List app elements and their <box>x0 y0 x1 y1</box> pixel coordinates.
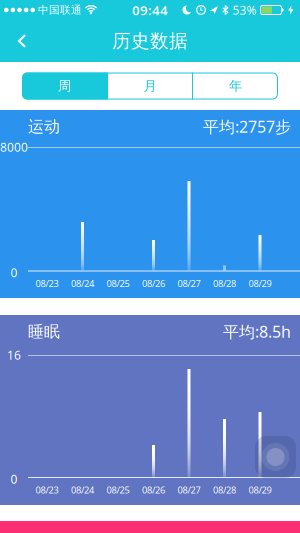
button[interactable]: 周 <box>22 72 107 99</box>
staticText: 0 <box>10 264 17 280</box>
staticText: 08/26 <box>142 277 165 290</box>
button[interactable]: 月 <box>108 72 192 99</box>
staticText: 08/23 <box>35 484 58 496</box>
staticText: 08/28 <box>213 277 236 290</box>
staticText: 08/26 <box>142 484 165 496</box>
staticText: 年 <box>229 78 242 94</box>
staticText: 周 <box>58 78 71 94</box>
staticText: 08/25 <box>106 277 129 290</box>
staticText: 08/24 <box>71 277 94 290</box>
staticText: 08/27 <box>177 277 200 290</box>
staticText: 历史数据 <box>112 29 188 52</box>
staticText: 中国联通 <box>38 3 82 16</box>
staticText: 08/24 <box>71 484 94 496</box>
staticText: 08/29 <box>248 277 271 290</box>
staticText: 09:44 <box>132 1 168 19</box>
staticText: 16 <box>7 347 21 363</box>
staticText: 运动 <box>28 117 60 136</box>
staticText: 08/29 <box>248 484 271 496</box>
staticText: 08/25 <box>106 484 129 496</box>
staticText: 睡眠 <box>28 322 60 341</box>
staticText: 8000 <box>0 139 28 155</box>
staticText: 53% <box>232 2 256 18</box>
button[interactable]: 年 <box>193 72 278 99</box>
staticText: 平均:2757步 <box>203 116 291 137</box>
staticText: 08/28 <box>213 484 236 496</box>
button[interactable] <box>255 436 296 478</box>
button[interactable] <box>0 20 40 62</box>
staticText: 月 <box>143 78 156 94</box>
staticText: 平均:8.5h <box>223 321 291 342</box>
staticText: 0 <box>10 471 17 487</box>
staticText: 08/23 <box>35 277 58 290</box>
staticText: 08/27 <box>177 484 200 496</box>
